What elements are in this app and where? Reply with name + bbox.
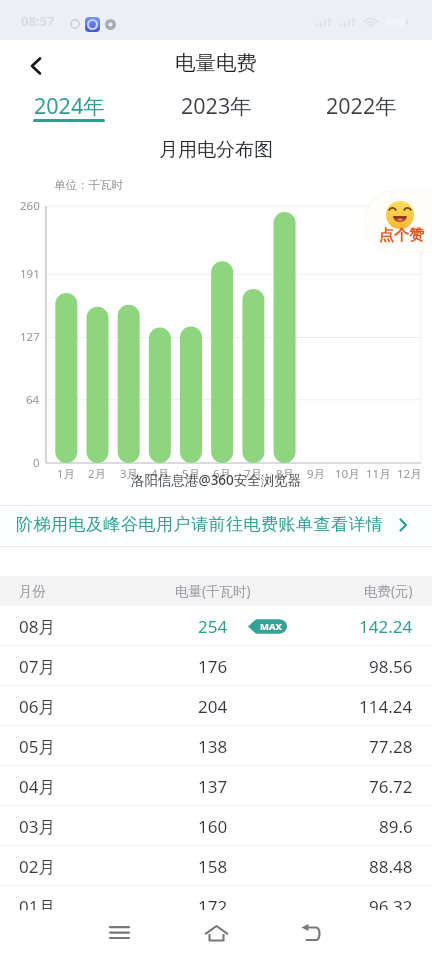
staticText: 172 [198, 895, 228, 918]
staticText: 98.56 [369, 655, 413, 678]
staticText: 114.24 [359, 695, 413, 718]
button[interactable]: 06月 [0, 686, 432, 726]
staticText: 点个赞 [379, 226, 424, 245]
staticText: 2023年 [181, 91, 252, 120]
staticText: 127 [20, 329, 40, 345]
button[interactable] [283, 910, 331, 960]
staticText: 电量电费 [175, 50, 257, 76]
staticText: MAX [260, 620, 282, 633]
staticText: 260 [20, 198, 40, 214]
button[interactable]: 03月 [0, 806, 432, 846]
staticText: 12月 [397, 466, 422, 482]
staticText: 2022年 [326, 91, 397, 120]
button[interactable]: 08月 [0, 606, 432, 646]
staticText: 08:57 [21, 12, 55, 30]
staticText: 6月 [213, 466, 232, 482]
staticText: 137 [198, 775, 228, 798]
staticText: 08月 [19, 615, 56, 638]
staticText: 158 [198, 855, 228, 878]
button[interactable]: 01月 [0, 886, 432, 926]
staticText: 阶梯用电及峰谷电用户请前往电费账单查看详情 [16, 514, 384, 535]
staticText: 76.72 [369, 775, 413, 798]
staticText: 0 [33, 455, 40, 471]
button[interactable] [18, 48, 54, 84]
staticText: 160 [198, 815, 228, 838]
staticText: 06月 [19, 695, 56, 718]
button[interactable]: 阶梯用电及峰谷电用户请前往电费账单查看详情 [0, 505, 432, 547]
staticText: 电量(千瓦时) [175, 582, 251, 600]
staticText: 2月 [88, 466, 107, 482]
staticText: 月用电分布图 [159, 138, 273, 162]
button[interactable]: 04月 [0, 766, 432, 806]
staticText: 254 [198, 615, 228, 638]
staticText: 11月 [366, 466, 391, 482]
staticText: 138 [198, 735, 228, 758]
staticText: 洛阳信息港@360安全浏览器 [131, 471, 302, 489]
staticText: 64 [26, 392, 40, 408]
staticText: 电费(元) [364, 582, 413, 600]
button[interactable] [96, 910, 144, 960]
button[interactable]: 点个赞 [366, 192, 432, 251]
button[interactable]: 02月 [0, 846, 432, 886]
staticText: 176 [198, 655, 228, 678]
button[interactable]: 07月 [0, 646, 432, 686]
staticText: 月份 [19, 583, 46, 600]
staticText: 03月 [19, 815, 56, 838]
staticText: 77.28 [369, 735, 413, 758]
staticText: 单位：千瓦时 [54, 178, 123, 192]
staticText: 9月 [307, 466, 326, 482]
staticText: 204 [198, 695, 228, 718]
staticText: 04月 [19, 775, 56, 798]
staticText: 2024年 [34, 91, 105, 120]
button[interactable]: 2023年 [161, 86, 271, 124]
staticText: 02月 [19, 855, 56, 878]
staticText: 10月 [335, 466, 360, 482]
staticText: 8月 [276, 466, 295, 482]
staticText: 142.24 [359, 615, 413, 638]
button[interactable]: 05月 [0, 726, 432, 766]
staticText: 3月 [120, 466, 139, 482]
button[interactable]: 2024年 [14, 86, 124, 124]
staticText: 96.32 [369, 895, 413, 918]
button[interactable] [192, 910, 240, 960]
staticText: 88.48 [369, 855, 413, 878]
staticText: 191 [20, 266, 40, 282]
staticText: 5月 [182, 466, 201, 482]
staticText: 05月 [19, 735, 56, 758]
staticText: 4月 [151, 466, 170, 482]
staticText: 1月 [57, 466, 76, 482]
staticText: 7月 [244, 466, 263, 482]
staticText: 07月 [19, 655, 56, 678]
button[interactable]: 2022年 [306, 86, 416, 124]
staticText: 89.6 [379, 815, 413, 838]
staticText: 01月 [19, 895, 56, 918]
